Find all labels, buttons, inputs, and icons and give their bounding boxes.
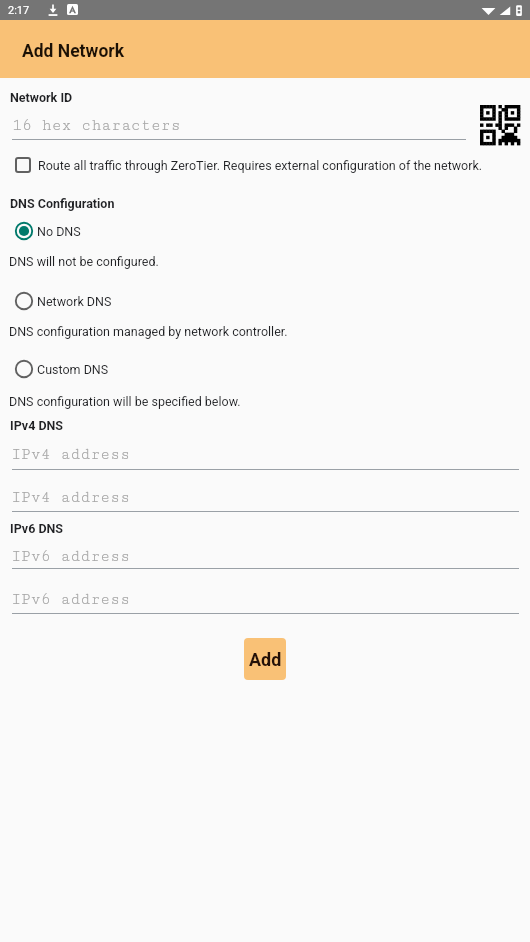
staticText: IPv4 DNS [10,418,64,433]
staticText: DNS will not be configured. [9,254,159,269]
staticText: IPv4 address [11,488,131,506]
button[interactable]: Route all traffic through ZeroTier. Requ… [0,148,530,182]
staticText: Add [249,649,282,670]
staticText: 16 hex characters [12,116,181,134]
staticText: Network DNS [37,294,112,309]
staticText: Custom DNS [37,362,109,377]
staticText: DNS configuration will be specified belo… [9,394,241,409]
button[interactable]: Custom DNS [0,352,530,386]
staticText: Add Network [22,41,125,62]
staticText: 2:17 [8,4,30,17]
button[interactable]: Network DNS [0,284,530,318]
staticText: IPv4 address [11,445,131,463]
button[interactable]: No DNS [0,214,530,248]
staticText: DNS Configuration [10,196,115,211]
staticText: DNS configuration managed by network con… [9,324,288,339]
staticText: IPv6 address [11,590,131,608]
staticText: IPv6 address [11,547,131,565]
staticText: Network ID [10,90,73,105]
staticText: No DNS [37,224,81,239]
button[interactable]: Scan QR code [476,101,524,149]
staticText: IPv6 DNS [10,521,64,536]
staticText: Route all traffic through ZeroTier. Requ… [38,158,483,173]
button[interactable]: Add [244,638,286,680]
